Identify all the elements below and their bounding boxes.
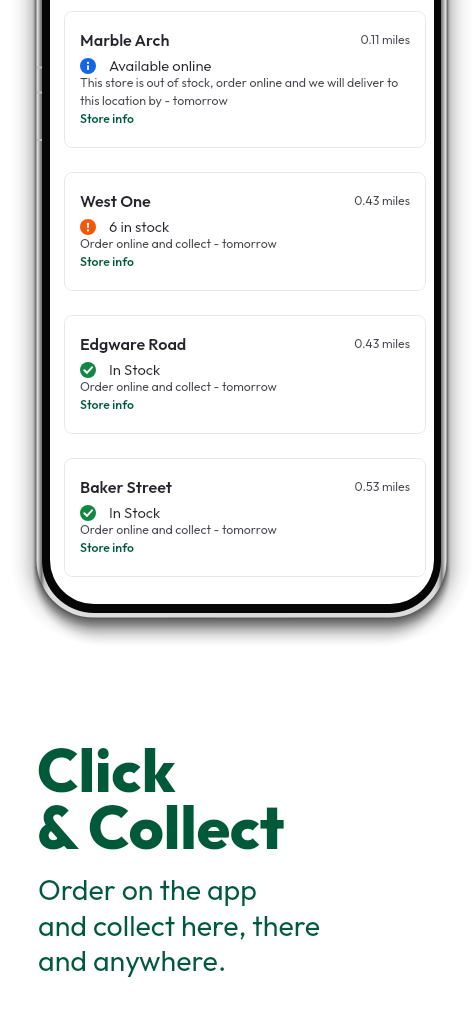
staticText: Order online and collect - tomorrow — [80, 379, 277, 395]
button[interactable]: Marble Arch — [64, 11, 426, 148]
other: In stock — [80, 362, 96, 378]
other: Low stock warning — [80, 219, 96, 235]
staticText: In Stock — [109, 503, 161, 522]
staticText: Order online and collect - tomorrow — [80, 522, 277, 538]
staticText: Marble Arch — [80, 30, 360, 50]
staticText: and collect here, there — [38, 907, 321, 943]
staticText: Click — [37, 732, 176, 808]
staticText: Order online and collect - tomorrow — [80, 236, 277, 252]
staticText: & Collect — [37, 789, 285, 865]
staticText: In Stock — [109, 360, 161, 379]
other: Information — [80, 58, 96, 74]
staticText: 6 in stock — [109, 217, 170, 236]
button[interactable]: Store info — [80, 540, 134, 555]
other: In stock — [80, 505, 96, 521]
staticText: 0.11 miles — [360, 32, 410, 48]
staticText: This store is out of stock, order online… — [80, 75, 410, 109]
button[interactable]: Store info — [80, 254, 134, 269]
button[interactable]: Edgware Road — [64, 315, 426, 434]
staticText: 0.43 miles — [354, 336, 410, 352]
staticText: 0.43 miles — [354, 193, 410, 209]
button[interactable]: Store info — [80, 397, 134, 412]
button[interactable]: Store info — [80, 111, 134, 126]
staticText: West One — [80, 191, 354, 211]
staticText: Available online — [109, 56, 212, 75]
staticText: 0.53 miles — [354, 479, 410, 495]
staticText: and anywhere. — [38, 942, 227, 978]
staticText: Order on the app — [38, 871, 257, 907]
button[interactable]: Baker Street — [64, 458, 426, 577]
staticText: Baker Street — [80, 477, 354, 497]
staticText: Edgware Road — [80, 334, 354, 354]
button[interactable]: West One — [64, 172, 426, 291]
